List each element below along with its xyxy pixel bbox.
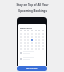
- button[interactable]: Get Started: [17, 66, 47, 71]
- staticText: March 2024: [20, 27, 32, 30]
- staticText: Get Started: [26, 67, 38, 70]
- staticText: Upcoming Bookings: [18, 9, 47, 13]
- staticText: Stay on Top of All Your: [16, 3, 49, 7]
